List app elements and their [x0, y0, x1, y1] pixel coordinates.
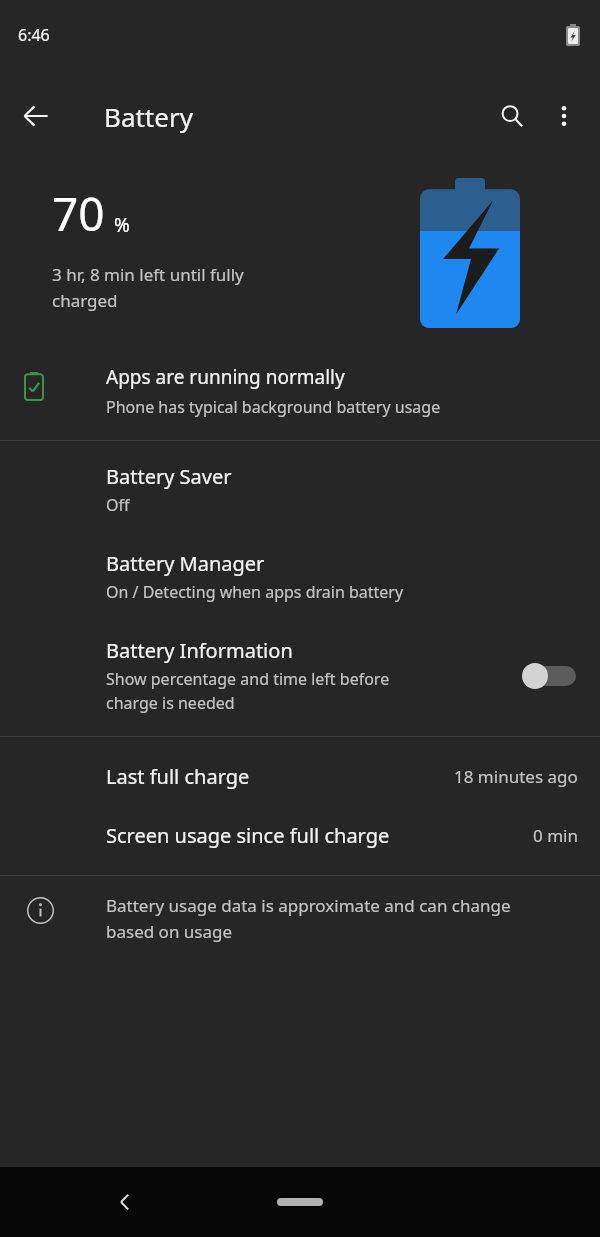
staticText: Battery Information: [106, 637, 293, 664]
staticText: Battery: [104, 99, 193, 134]
staticText: 70: [52, 182, 105, 245]
staticText: Apps are running normally: [106, 364, 345, 390]
button[interactable]: Home: [277, 1198, 323, 1206]
button[interactable]: Screen usage since full charge: [0, 814, 600, 875]
button[interactable]: Back: [100, 1177, 150, 1227]
staticText: 3 hr, 8 min left until fully charged: [52, 263, 244, 312]
staticText: On / Detecting when apps drain battery: [106, 581, 404, 603]
staticText: 0 min: [533, 824, 578, 847]
button[interactable]: Battery Saver: [0, 441, 600, 536]
staticText: 6:46: [18, 24, 50, 46]
staticText: Show percentage and time left before cha…: [106, 668, 390, 714]
other: Information: [26, 896, 54, 924]
button[interactable]: Last full charge: [0, 737, 600, 814]
staticText: Last full charge: [106, 763, 250, 790]
staticText: Off: [106, 494, 130, 516]
button[interactable]: More options: [538, 90, 590, 142]
staticText: Phone has typical background battery usa…: [106, 396, 441, 418]
button[interactable]: Back: [8, 88, 64, 144]
staticText: %: [114, 212, 130, 238]
button[interactable]: Battery Manager: [0, 536, 600, 623]
button[interactable]: Apps are running normally: [0, 362, 600, 440]
staticText: 18 minutes ago: [454, 765, 578, 788]
staticText: Screen usage since full charge: [106, 822, 390, 849]
button[interactable]: Search: [486, 90, 538, 142]
staticText: Battery usage data is approximate and ca…: [106, 894, 511, 943]
button[interactable]: Battery Information toggle: [520, 656, 580, 696]
staticText: Battery Manager: [106, 550, 265, 577]
button[interactable]: Battery Information: [0, 623, 600, 736]
staticText: Battery Saver: [106, 463, 232, 490]
